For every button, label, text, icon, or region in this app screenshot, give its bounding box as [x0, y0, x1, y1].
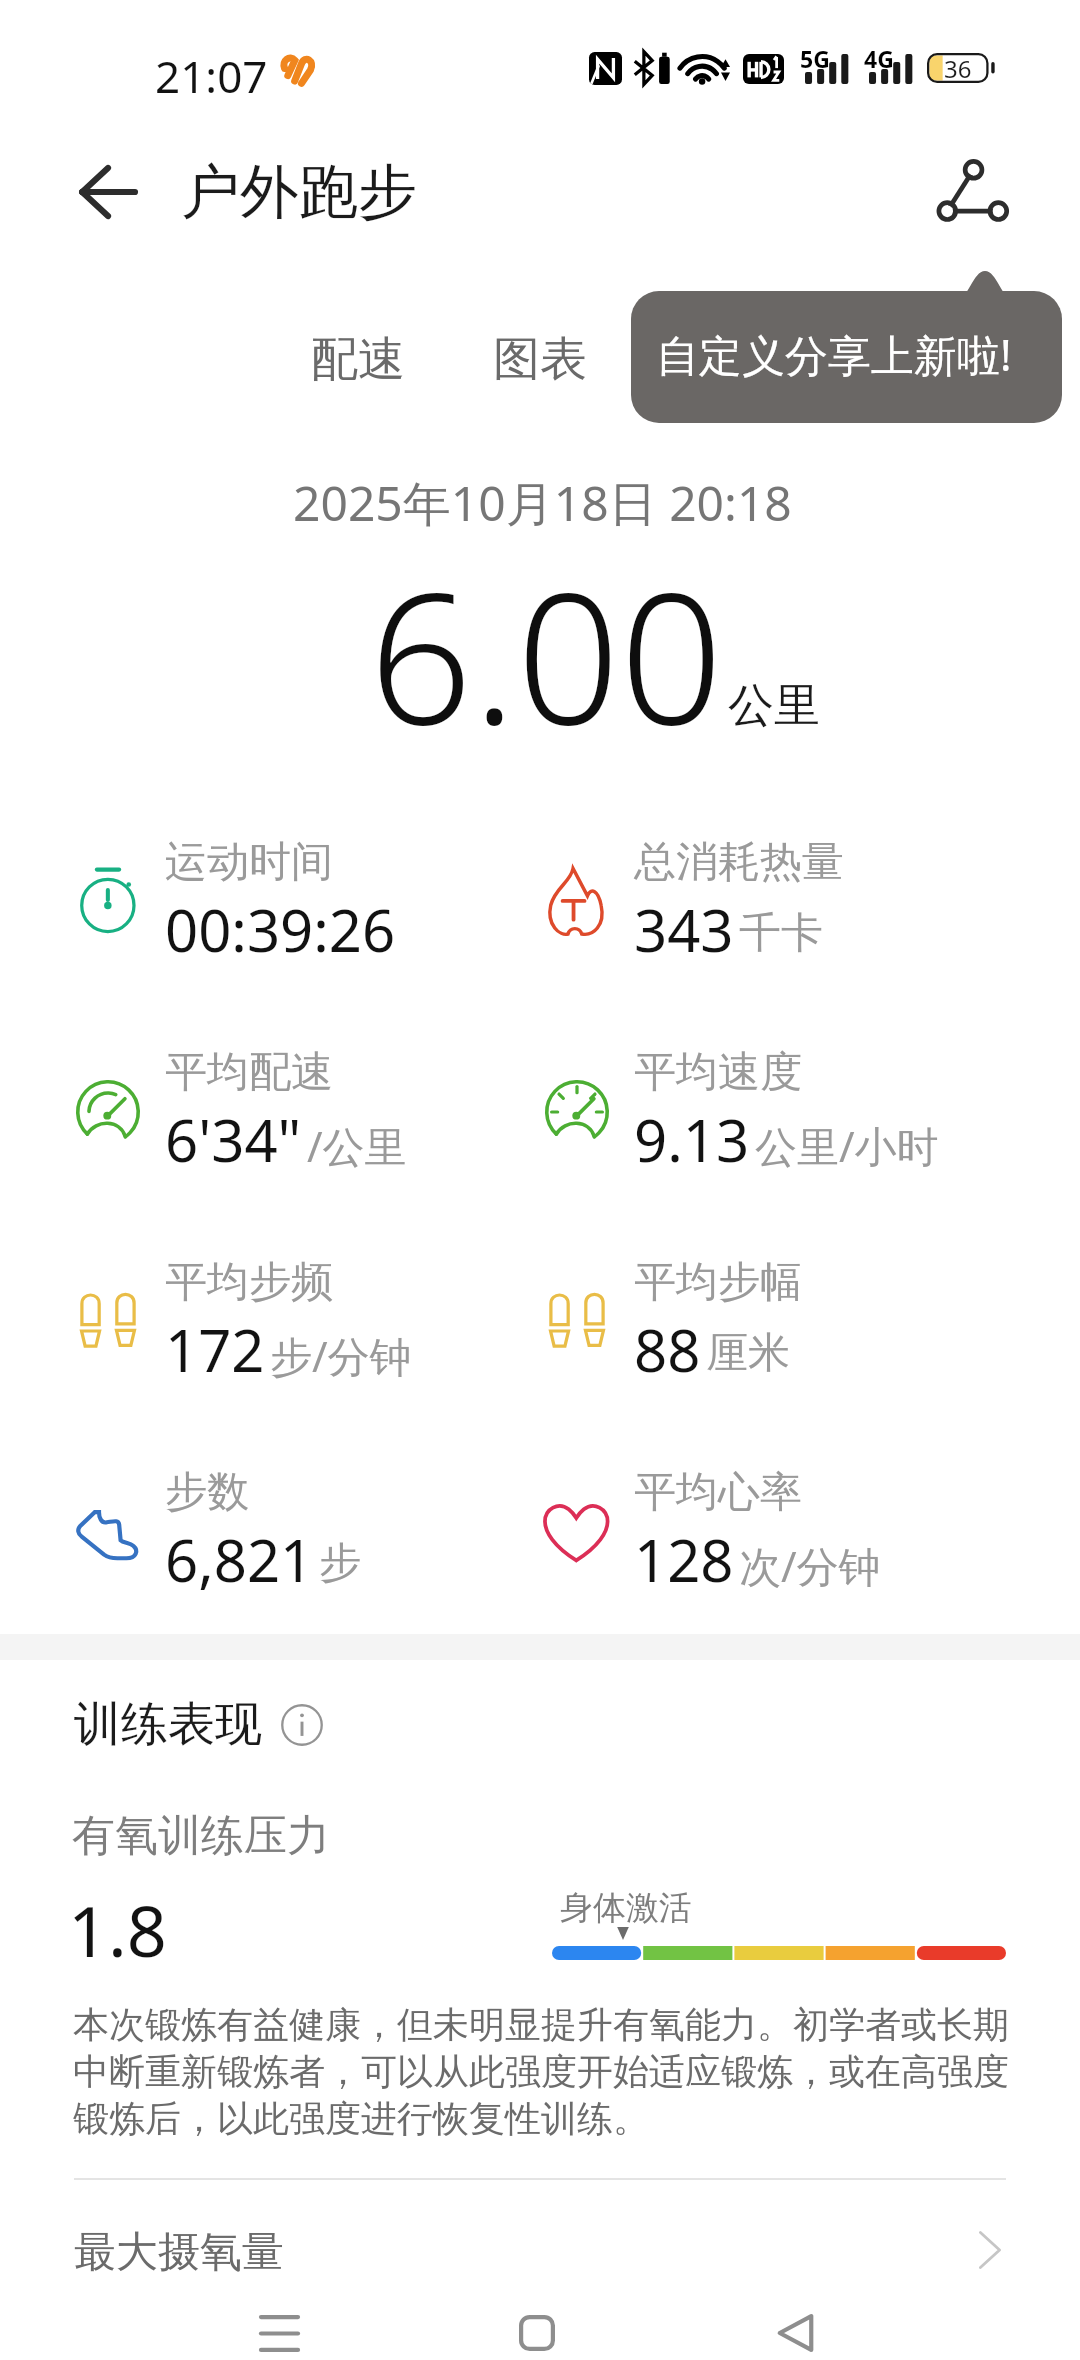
- staticText: 36: [944, 52, 972, 85]
- staticText: /公里: [307, 1117, 407, 1174]
- staticText: 千卡: [739, 907, 823, 960]
- staticText: 最大摄氧量: [74, 2226, 284, 2279]
- staticText: 公里: [728, 677, 820, 735]
- staticText: 自定义分享上新啦!: [656, 325, 1012, 384]
- staticText: 身体激活: [560, 1887, 692, 1929]
- staticText: 172: [165, 1310, 265, 1389]
- staticText: 有氧训练压力: [72, 1809, 330, 1863]
- button[interactable]: 配速: [290, 318, 426, 401]
- staticText: 运动时间: [165, 836, 333, 889]
- staticText: 配速: [311, 330, 405, 389]
- staticText: 6.00: [369, 531, 724, 778]
- staticText: 平均配速: [165, 1046, 333, 1099]
- staticText: 21:07: [155, 46, 268, 106]
- button[interactable]: Recents: [224, 2279, 334, 2360]
- staticText: 总消耗热量: [634, 836, 844, 889]
- staticText: 次/分钟: [739, 1537, 881, 1594]
- staticText: 步: [319, 1537, 361, 1590]
- staticText: 343: [634, 890, 734, 969]
- staticText: 平均心率: [634, 1466, 802, 1519]
- staticText: 88: [634, 1310, 701, 1389]
- staticText: 128: [634, 1520, 734, 1599]
- button[interactable]: Info: [276, 1699, 328, 1751]
- staticText: 5G: [800, 43, 830, 74]
- staticText: 9.13: [634, 1100, 750, 1179]
- staticText: 步数: [165, 1466, 249, 1519]
- button[interactable]: Back: [740, 2279, 850, 2360]
- staticText: 6'34": [165, 1100, 302, 1179]
- button[interactable]: Home: [482, 2279, 592, 2360]
- staticText: 厘米: [706, 1327, 790, 1380]
- button[interactable]: Share: [916, 141, 1026, 251]
- staticText: 平均速度: [634, 1046, 802, 1099]
- staticText: 平均步频: [165, 1256, 333, 1309]
- button[interactable]: 自定义分享上新啦!: [631, 271, 1062, 423]
- staticText: 00:39:26: [165, 890, 396, 969]
- staticText: 步/分钟: [270, 1327, 412, 1384]
- staticText: 1.8: [68, 1882, 167, 1977]
- staticText: 本次锻炼有益健康，但未明显提升有氧能力。初学者或长期中断重新锻炼者，可以从此强度…: [73, 2002, 1011, 2142]
- button[interactable]: 图表: [472, 318, 608, 401]
- staticText: 6,821: [165, 1520, 314, 1599]
- staticText: 图表: [493, 330, 587, 389]
- staticText: 户外跑步: [181, 155, 417, 229]
- staticText: 4G: [864, 43, 894, 74]
- button[interactable]: 最大摄氧量: [74, 2200, 1006, 2302]
- staticText: 2025年10月18日 20:18: [293, 470, 792, 536]
- staticText: 训练表现: [74, 1695, 262, 1754]
- button[interactable]: Back: [53, 136, 163, 246]
- staticText: 平均步幅: [634, 1256, 802, 1309]
- staticText: 公里/小时: [755, 1117, 939, 1174]
